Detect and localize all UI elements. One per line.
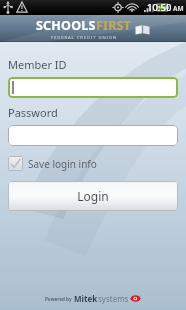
button[interactable] bbox=[8, 125, 178, 146]
staticText: 10:50 bbox=[147, 1, 172, 14]
staticText: Powered by bbox=[45, 296, 72, 302]
button[interactable]: Save login info bbox=[8, 155, 97, 172]
staticText: systems bbox=[98, 293, 129, 304]
staticText: SCHOOLS bbox=[36, 17, 96, 34]
staticText: FIRST bbox=[96, 17, 132, 34]
staticText: Mitek bbox=[74, 293, 98, 304]
staticText: AM bbox=[173, 4, 184, 13]
staticText: FEDERAL CREDIT UNION bbox=[51, 35, 118, 41]
staticText: Member ID bbox=[8, 57, 67, 72]
staticText: Save login info bbox=[28, 157, 97, 171]
staticText: Password bbox=[8, 105, 58, 120]
staticText: Login bbox=[77, 188, 109, 204]
button[interactable] bbox=[8, 77, 178, 98]
button[interactable]: Login bbox=[8, 181, 178, 211]
